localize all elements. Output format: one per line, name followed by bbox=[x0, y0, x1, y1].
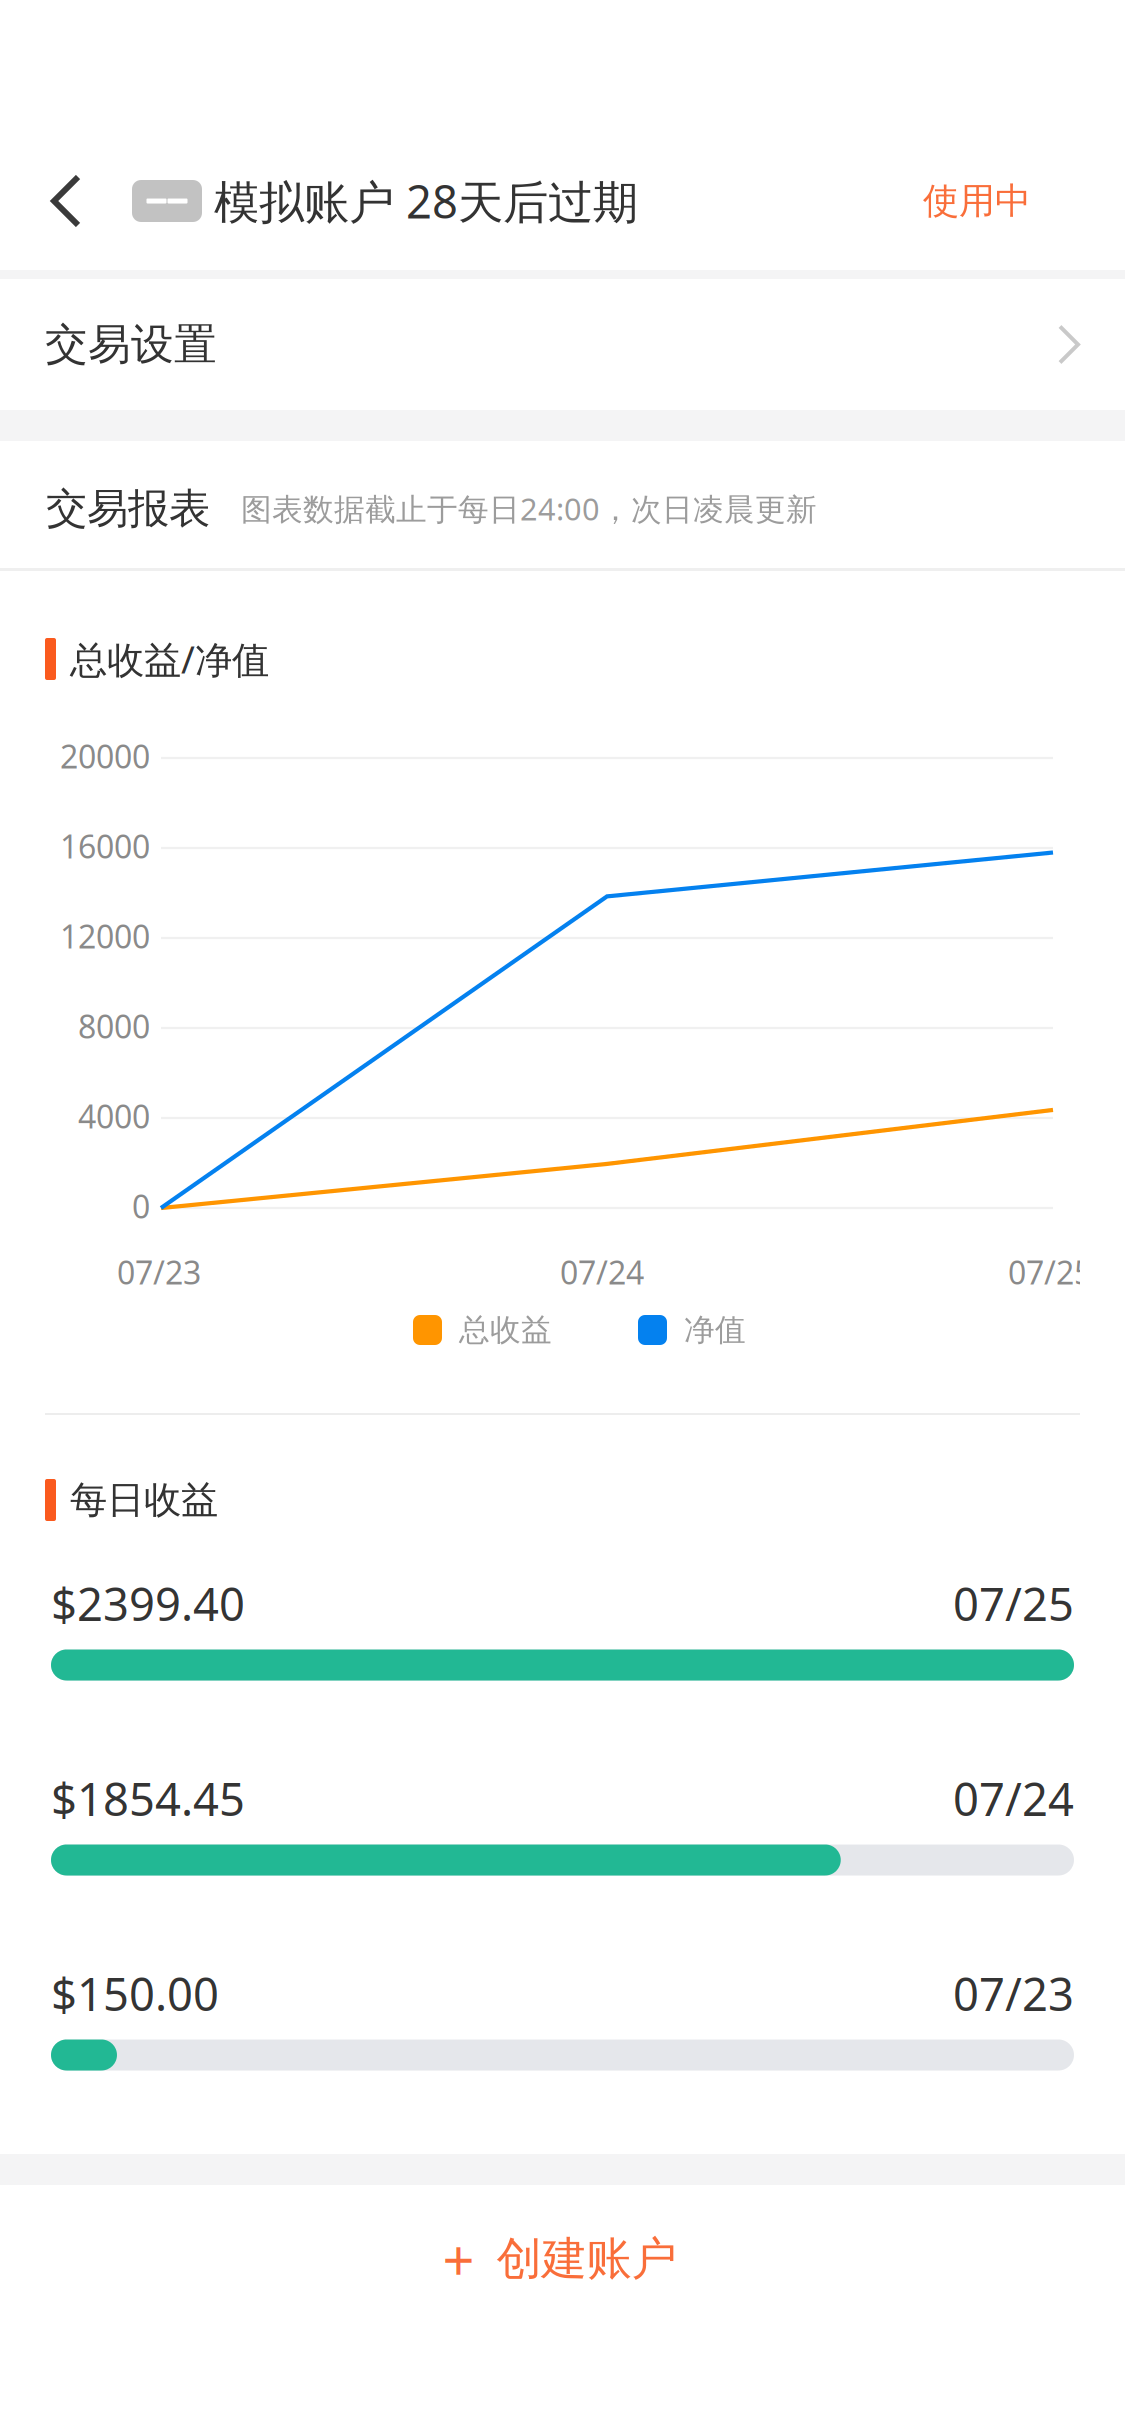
staticText: 使用中 bbox=[923, 179, 1031, 223]
staticText: 0 bbox=[132, 1185, 150, 1227]
staticText: 交易报表 bbox=[46, 483, 210, 534]
staticText: 07/23 bbox=[117, 1251, 201, 1293]
button[interactable]: 使用中 bbox=[893, 137, 1125, 265]
staticText: $1854.45 bbox=[51, 1768, 245, 1829]
staticText: + bbox=[442, 2222, 474, 2296]
staticText: $2399.40 bbox=[51, 1573, 245, 1634]
staticText: 07/25 bbox=[1008, 1251, 1092, 1293]
staticText: 交易设置 bbox=[45, 318, 217, 371]
staticText: 创建账户 bbox=[496, 2231, 676, 2287]
staticText: 07/24 bbox=[953, 1768, 1074, 1829]
staticText: 4000 bbox=[78, 1095, 150, 1137]
staticText: 07/24 bbox=[560, 1251, 644, 1293]
staticText: 每日收益 bbox=[70, 1477, 218, 1523]
staticText: 16000 bbox=[60, 825, 150, 867]
staticText: 模拟账户 28天后过期 bbox=[214, 171, 638, 231]
staticText: 图表数据截止于每日24:00，次日凌晨更新 bbox=[241, 488, 817, 529]
staticText: 07/25 bbox=[953, 1573, 1074, 1634]
staticText: $150.00 bbox=[51, 1963, 219, 2024]
button[interactable]: 交易设置 bbox=[0, 279, 1125, 410]
staticText: 净值 bbox=[684, 1311, 746, 1349]
button[interactable]: Back bbox=[0, 132, 132, 270]
staticText: 20000 bbox=[60, 735, 150, 777]
staticText: 总收益/净值 bbox=[70, 634, 269, 684]
staticText: 8000 bbox=[78, 1005, 150, 1047]
button[interactable]: + bbox=[0, 2185, 1125, 2333]
staticText: 07/23 bbox=[953, 1963, 1074, 2024]
staticText: 总收益 bbox=[459, 1311, 552, 1349]
staticText: 12000 bbox=[60, 915, 150, 957]
